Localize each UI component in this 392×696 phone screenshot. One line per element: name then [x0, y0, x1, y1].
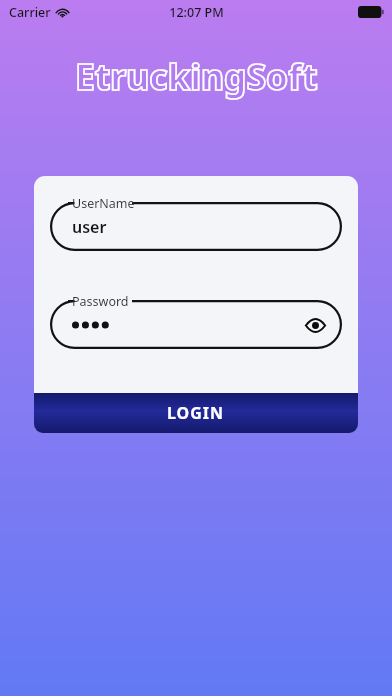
- staticText: 12:07 PM: [169, 4, 224, 21]
- staticText: EtruckingSoft: [75, 53, 318, 101]
- staticText: user: [72, 216, 107, 238]
- staticText: LOGIN: [167, 402, 225, 424]
- button[interactable]: Toggle password visibility: [302, 312, 328, 338]
- button[interactable]: UserName: [50, 202, 342, 251]
- button[interactable]: LOGIN: [34, 393, 358, 433]
- staticText: Carrier: [9, 4, 51, 21]
- staticText: Password: [72, 293, 129, 310]
- staticText: UserName: [72, 195, 135, 212]
- button[interactable]: Password: [50, 300, 342, 349]
